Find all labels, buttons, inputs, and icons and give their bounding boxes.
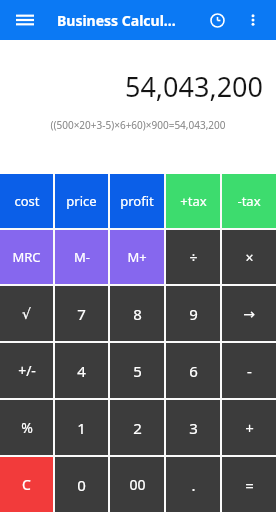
button[interactable]: 8 <box>110 286 164 341</box>
staticText: 7 <box>77 304 86 324</box>
button[interactable]: → <box>222 286 276 341</box>
staticText: × <box>245 248 254 267</box>
staticText: M- <box>74 248 90 266</box>
staticText: M+ <box>127 248 147 266</box>
staticText: cost <box>14 192 40 210</box>
button[interactable]: × <box>222 230 276 284</box>
button[interactable]: +/- <box>0 343 53 398</box>
button[interactable]: MRC <box>0 230 53 284</box>
staticText: 6 <box>189 361 198 381</box>
staticText: 54,043,200 <box>124 68 263 105</box>
button[interactable]: - <box>222 343 276 398</box>
button[interactable]: 1 <box>55 400 108 455</box>
button[interactable]: . <box>166 457 220 512</box>
button[interactable]: 9 <box>166 286 220 341</box>
staticText: 8 <box>133 304 142 324</box>
button[interactable]: 3 <box>166 400 220 455</box>
staticText: ÷ <box>189 248 198 267</box>
staticText: . <box>191 475 196 495</box>
button[interactable]: 2 <box>110 400 164 455</box>
staticText: +/- <box>18 361 36 380</box>
button[interactable]: More options <box>238 5 268 35</box>
button[interactable]: = <box>222 457 276 512</box>
button[interactable]: % <box>0 400 53 455</box>
staticText: 4 <box>77 361 86 381</box>
button[interactable]: -tax <box>222 174 276 228</box>
button[interactable]: 7 <box>55 286 108 341</box>
staticText: ((500×20+3-5)×6+60)×900=54,043,200 <box>0 118 276 132</box>
staticText: MRC <box>12 248 41 266</box>
staticText: Business Calcul… <box>57 11 176 30</box>
button[interactable]: 6 <box>166 343 220 398</box>
button[interactable]: ÷ <box>166 230 220 284</box>
staticText: = <box>245 475 254 495</box>
button[interactable]: History <box>202 5 232 35</box>
staticText: -tax <box>237 192 261 210</box>
staticText: 00 <box>129 475 146 494</box>
button[interactable]: M- <box>55 230 108 284</box>
staticText: 3 <box>189 418 198 438</box>
button[interactable]: price <box>55 174 108 228</box>
staticText: 2 <box>133 418 142 438</box>
staticText: +tax <box>180 192 207 210</box>
button[interactable]: 5 <box>110 343 164 398</box>
staticText: - <box>247 361 252 381</box>
button[interactable]: C <box>0 457 53 512</box>
staticText: price <box>66 192 97 210</box>
button[interactable]: √ <box>0 286 53 341</box>
staticText: + <box>245 418 254 438</box>
button[interactable]: +tax <box>166 174 220 228</box>
staticText: % <box>21 418 33 437</box>
button[interactable]: 00 <box>110 457 164 512</box>
staticText: 0 <box>77 475 86 495</box>
staticText: 5 <box>133 361 142 381</box>
button[interactable]: 4 <box>55 343 108 398</box>
staticText: profit <box>120 192 154 210</box>
staticText: 1 <box>77 418 86 438</box>
button[interactable]: 0 <box>55 457 108 512</box>
staticText: √ <box>22 306 31 322</box>
button[interactable]: cost <box>0 174 53 228</box>
button[interactable]: + <box>222 400 276 455</box>
staticText: 9 <box>189 304 198 324</box>
staticText: → <box>243 306 255 322</box>
button[interactable]: Open navigation menu <box>9 4 41 36</box>
button[interactable]: M+ <box>110 230 164 284</box>
staticText: C <box>22 475 31 494</box>
button[interactable]: profit <box>110 174 164 228</box>
